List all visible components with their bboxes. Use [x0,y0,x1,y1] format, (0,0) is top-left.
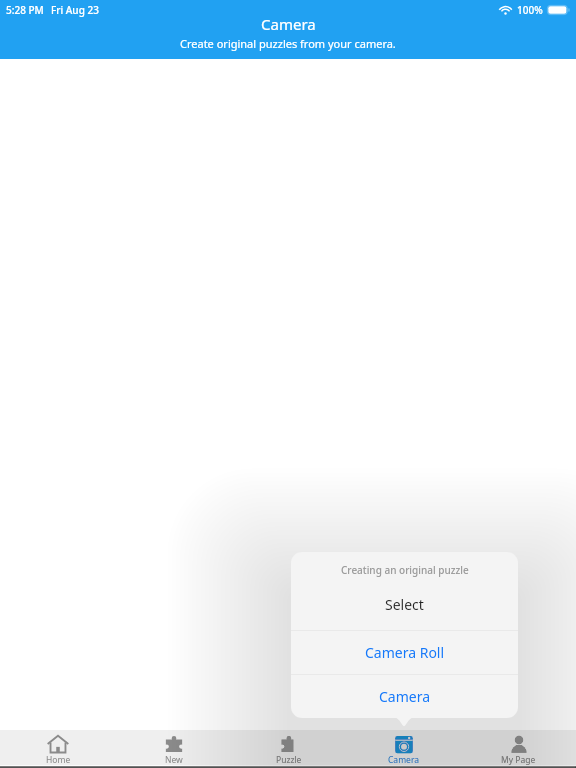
staticText: Select [385,595,424,614]
button[interactable]: Camera [291,675,518,718]
button[interactable]: Puzzle [231,730,346,765]
button[interactable]: Creating an original puzzle [291,552,518,630]
staticText: 100% [517,3,543,17]
staticText: 5:28 PM [6,3,44,17]
staticText: Home [46,754,71,765]
staticText: Camera [388,754,419,765]
staticText: Camera [379,687,431,706]
staticText: Puzzle [276,754,302,765]
staticText: Creating an original puzzle [341,563,469,577]
button[interactable]: Camera Roll [291,631,518,674]
staticText: My Page [501,754,536,765]
staticText: Camera Roll [365,643,445,662]
button[interactable]: Camera [346,730,461,765]
button[interactable]: Home [0,730,116,765]
staticText: Camera [261,14,316,34]
button[interactable]: My Page [461,730,576,765]
button[interactable]: New [116,730,231,765]
staticText: New [165,754,183,765]
staticText: Create original puzzles from your camera… [180,36,396,51]
staticText: Fri Aug 23 [51,3,99,17]
